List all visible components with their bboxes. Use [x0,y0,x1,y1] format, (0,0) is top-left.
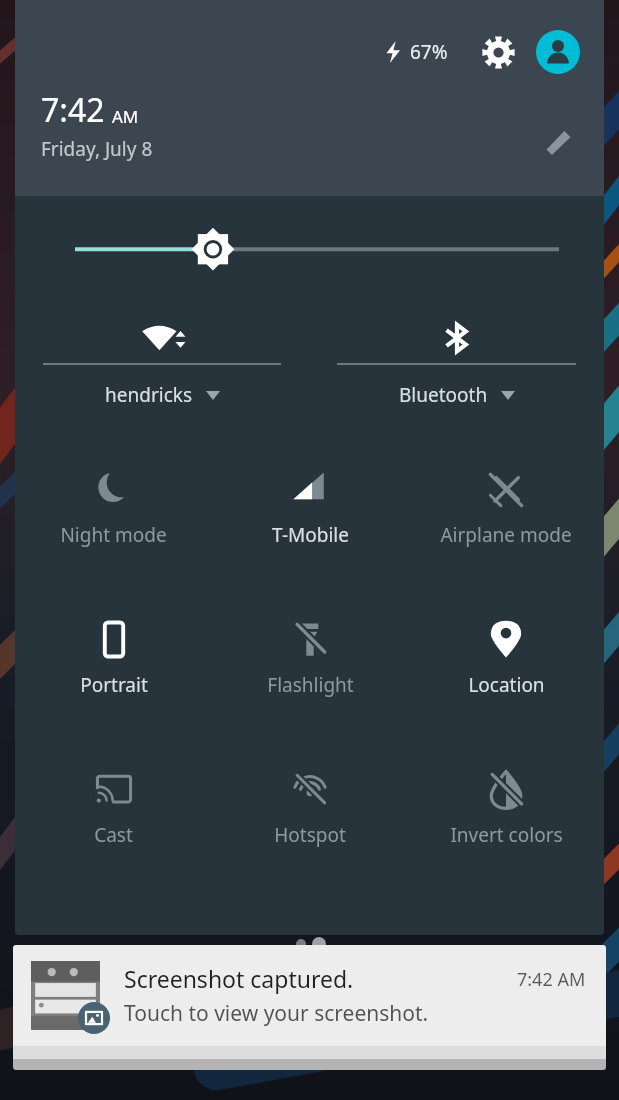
staticText: Touch to view your screenshot. [124,999,429,1028]
staticText: Night mode [60,522,167,548]
button[interactable]: Night mode [15,458,212,548]
staticText: Invert colors [450,822,563,848]
button[interactable]: Brightness [15,210,604,284]
staticText: Screenshot captured. [124,963,354,994]
staticText: 67% [410,39,448,65]
button[interactable]: Airplane mode [408,458,604,548]
staticText: Airplane mode [440,522,572,548]
staticText: Friday, July 8 [41,136,153,162]
staticText: 7:42 [41,88,105,132]
staticText: Cast [94,822,133,848]
button[interactable]: Bluetooth [309,312,604,408]
button[interactable]: Screenshot captured. [13,945,606,1070]
staticText: T-Mobile [272,522,349,548]
staticText: Flashlight [267,672,354,698]
button[interactable]: Portrait [15,608,212,698]
button[interactable]: Location [408,608,604,698]
button[interactable]: T-Mobile [212,458,408,548]
button[interactable]: hendricks [15,312,309,408]
staticText: AM [112,105,139,128]
button[interactable]: Flashlight [212,608,408,698]
staticText: 7:42 AM [517,967,586,992]
button[interactable]: Settings [476,30,520,74]
staticText: Location [468,672,545,698]
button[interactable]: User account [536,30,580,74]
button[interactable]: Edit [536,118,582,164]
staticText: hendricks [105,382,193,408]
button[interactable]: Invert colors [408,758,604,848]
button[interactable]: Cast [15,758,212,848]
staticText: Bluetooth [399,382,488,408]
staticText: Portrait [80,672,148,698]
staticText: Hotspot [274,822,346,848]
button[interactable]: Hotspot [212,758,408,848]
